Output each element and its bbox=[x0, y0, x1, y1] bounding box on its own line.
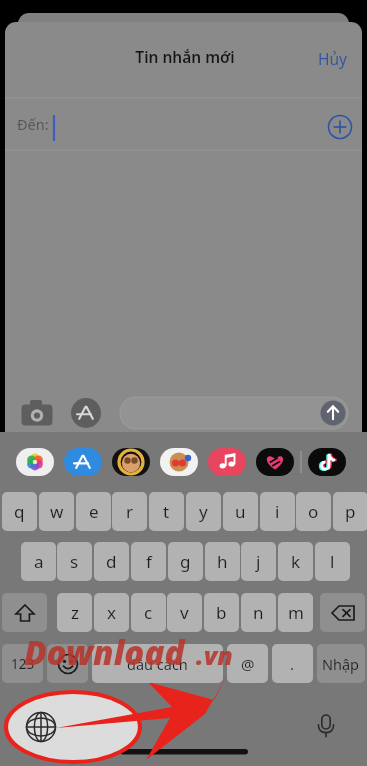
button[interactable]: g bbox=[168, 542, 203, 581]
button[interactable]: e bbox=[76, 492, 111, 531]
staticText: Tin nhắn mới bbox=[120, 46, 250, 70]
button[interactable]: Biểu tượng cảm xúc bbox=[47, 644, 88, 683]
button[interactable]: a bbox=[21, 542, 56, 581]
button[interactable]: s bbox=[57, 542, 92, 581]
button[interactable]: o bbox=[296, 492, 331, 531]
staticText: a bbox=[34, 550, 44, 573]
button[interactable]: m bbox=[278, 593, 313, 632]
staticText: m bbox=[288, 601, 304, 624]
button[interactable]: u bbox=[223, 492, 258, 531]
staticText: t bbox=[163, 500, 170, 523]
staticText: Download bbox=[24, 630, 185, 675]
button[interactable]: Tin nhắn bbox=[120, 397, 348, 429]
staticText: q bbox=[14, 500, 25, 523]
staticText: Đến: bbox=[17, 114, 49, 134]
button[interactable]: 123 bbox=[2, 644, 43, 683]
staticText: o bbox=[308, 500, 319, 523]
button[interactable]: App Store bbox=[64, 448, 102, 476]
button[interactable]: k bbox=[278, 542, 313, 581]
button[interactable]: Xóa bbox=[320, 593, 365, 632]
button[interactable]: Ảnh bbox=[16, 448, 54, 476]
button[interactable]: Đến: bbox=[0, 99, 300, 149]
staticText: v bbox=[180, 601, 189, 624]
staticText: z bbox=[71, 601, 79, 624]
staticText: c bbox=[144, 601, 153, 624]
button[interactable]: y bbox=[186, 492, 221, 531]
button[interactable]: Thêm liên hệ bbox=[322, 109, 358, 145]
button[interactable]: l bbox=[315, 542, 350, 581]
button[interactable]: Ứng dụng bbox=[69, 396, 103, 430]
staticText: f bbox=[146, 550, 152, 573]
button[interactable]: @ bbox=[227, 644, 268, 683]
button[interactable]: w bbox=[39, 492, 74, 531]
button[interactable]: TikTok bbox=[304, 448, 342, 476]
staticText: x bbox=[107, 601, 116, 624]
button[interactable]: v bbox=[167, 593, 202, 632]
button[interactable]: Gửi bbox=[320, 400, 346, 426]
button[interactable]: x bbox=[94, 593, 129, 632]
staticText: y bbox=[199, 500, 208, 523]
staticText: dầu cách bbox=[127, 654, 188, 674]
button[interactable]: f bbox=[131, 542, 166, 581]
staticText: g bbox=[180, 550, 191, 573]
button[interactable]: c bbox=[131, 593, 166, 632]
staticText: . bbox=[290, 654, 295, 674]
staticText: k bbox=[291, 550, 301, 573]
staticText: w bbox=[50, 500, 64, 523]
button[interactable]: d bbox=[94, 542, 129, 581]
button[interactable]: t bbox=[149, 492, 184, 531]
staticText: Hủy bbox=[318, 48, 347, 69]
button[interactable]: n bbox=[241, 593, 276, 632]
staticText: .vn bbox=[196, 638, 233, 672]
button[interactable]: Nhạc bbox=[208, 448, 246, 476]
button[interactable]: Sức khỏe bbox=[256, 448, 294, 476]
staticText: n bbox=[253, 601, 264, 624]
button[interactable]: q bbox=[2, 492, 37, 531]
staticText: 123 bbox=[11, 655, 35, 673]
button[interactable]: Memoji bbox=[112, 448, 150, 476]
staticText: r bbox=[126, 500, 134, 523]
staticText: h bbox=[217, 550, 228, 573]
button[interactable]: Ghi âm bbox=[308, 708, 344, 744]
staticText: s bbox=[70, 550, 79, 573]
staticText: l bbox=[330, 550, 335, 573]
staticText: e bbox=[89, 500, 99, 523]
button[interactable]: dầu cách bbox=[92, 644, 223, 683]
button[interactable]: Nhập bbox=[317, 644, 365, 683]
button[interactable]: r bbox=[112, 492, 147, 531]
staticText: b bbox=[216, 601, 227, 624]
button[interactable]: Shift bbox=[2, 593, 47, 632]
button[interactable]: Hủy bbox=[310, 44, 354, 72]
button[interactable]: z bbox=[57, 593, 92, 632]
staticText: j bbox=[256, 550, 261, 573]
button[interactable]: Memoji 2 bbox=[160, 448, 198, 476]
staticText: p bbox=[345, 500, 356, 523]
staticText: i bbox=[275, 500, 280, 523]
button[interactable]: Chụp ảnh bbox=[20, 396, 54, 430]
staticText: u bbox=[235, 500, 246, 523]
staticText: d bbox=[106, 550, 117, 573]
button[interactable]: h bbox=[205, 542, 240, 581]
button[interactable]: p bbox=[333, 492, 367, 531]
button[interactable]: . bbox=[272, 644, 313, 683]
button[interactable]: b bbox=[204, 593, 239, 632]
staticText: Nhập bbox=[322, 654, 360, 674]
button[interactable]: Đổi bàn phím bbox=[22, 708, 60, 746]
button[interactable]: i bbox=[260, 492, 295, 531]
staticText: @ bbox=[241, 654, 255, 674]
button[interactable]: j bbox=[241, 542, 276, 581]
